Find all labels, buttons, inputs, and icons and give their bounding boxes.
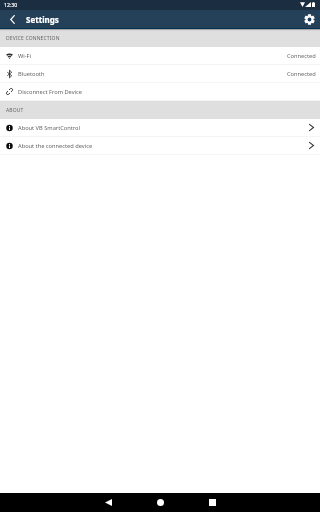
- staticText: Connected: [287, 70, 316, 78]
- button[interactable]: Wi-Fi: [0, 47, 320, 64]
- button[interactable]: Recent apps: [186, 493, 238, 512]
- button[interactable]: Navigate up: [0, 10, 25, 28]
- staticText: Disconnect From Device: [18, 88, 82, 96]
- button[interactable]: Settings: [298, 10, 320, 28]
- staticText: ABOUT: [6, 107, 24, 114]
- staticText: Connected: [287, 52, 316, 60]
- staticText: About the connected device: [18, 142, 93, 150]
- button[interactable]: Back: [82, 493, 134, 512]
- staticText: Wi-Fi: [18, 52, 32, 60]
- staticText: Settings: [26, 14, 59, 25]
- staticText: DEVICE CONNECTION: [6, 35, 60, 42]
- button[interactable]: About the connected device: [0, 137, 320, 154]
- staticText: About VB SmartControl: [18, 124, 80, 132]
- staticText: Bluetooth: [18, 70, 45, 78]
- staticText: 12:30: [4, 1, 18, 8]
- button[interactable]: About VB SmartControl: [0, 119, 320, 136]
- button[interactable]: Home: [134, 493, 186, 512]
- button[interactable]: Bluetooth: [0, 65, 320, 82]
- button[interactable]: Disconnect From Device: [0, 83, 320, 100]
